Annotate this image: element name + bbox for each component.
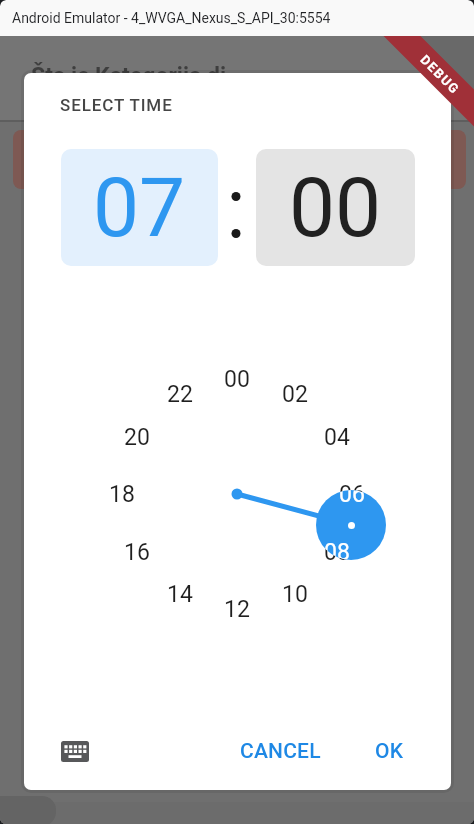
staticText: 04 xyxy=(324,424,350,451)
button[interactable]: 00 xyxy=(215,363,259,395)
staticText: 07 xyxy=(93,160,186,256)
button[interactable]: 12 xyxy=(215,593,259,625)
button[interactable]: 02 xyxy=(273,378,317,410)
button[interactable]: 07 xyxy=(61,149,218,266)
button[interactable]: 08 xyxy=(315,536,359,568)
button[interactable]: 20 xyxy=(115,421,159,453)
button[interactable]: 18 xyxy=(100,478,144,510)
staticText: 06 xyxy=(339,481,365,508)
staticText: OK xyxy=(375,739,404,764)
button[interactable]: 00 xyxy=(256,149,415,266)
button[interactable] xyxy=(61,735,105,768)
button[interactable]: 04 xyxy=(315,421,359,453)
staticText: CANCEL xyxy=(240,739,321,764)
button[interactable]: 16 xyxy=(115,536,159,568)
staticText: 06 xyxy=(339,490,365,508)
button[interactable]: 14 xyxy=(158,578,202,610)
staticText: 20 xyxy=(124,424,150,451)
staticText: 16 xyxy=(124,539,150,566)
button[interactable]: 06 xyxy=(316,490,386,560)
button[interactable]: 10 xyxy=(273,578,317,610)
staticText: 18 xyxy=(109,481,135,508)
staticText: 12 xyxy=(224,596,250,623)
staticText: 08 xyxy=(324,539,350,566)
staticText: 14 xyxy=(167,581,193,608)
staticText: 10 xyxy=(282,581,308,608)
button[interactable]: OK xyxy=(349,736,429,766)
staticText: 08 xyxy=(324,539,350,560)
staticText: 22 xyxy=(167,381,193,408)
staticText: 00 xyxy=(289,160,382,256)
staticText: DEBUG xyxy=(417,52,463,97)
button[interactable]: CANCEL xyxy=(220,736,341,766)
button[interactable]: 22 xyxy=(158,378,202,410)
staticText: SELECT TIME xyxy=(60,95,173,115)
staticText: 00 xyxy=(224,366,250,393)
button[interactable]: 06 xyxy=(330,478,374,510)
staticText: 02 xyxy=(282,381,308,408)
staticText: Android Emulator - 4_WVGA_Nexus_S_API_30… xyxy=(12,10,331,26)
staticText: Šta je Kategorija di xyxy=(31,63,227,90)
